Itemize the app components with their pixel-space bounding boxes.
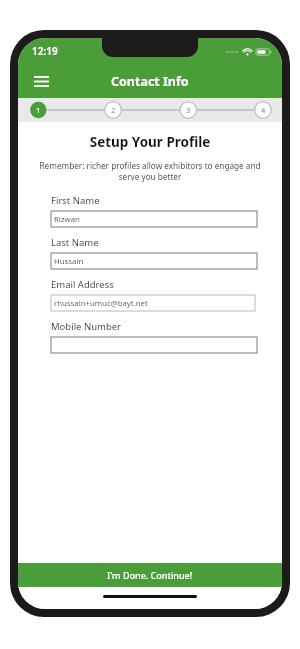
staticText: 2 xyxy=(111,105,116,115)
staticText: Mobile Number xyxy=(51,320,122,333)
staticText: rhussain+umuc@bayt.net xyxy=(54,298,148,309)
button[interactable] xyxy=(51,337,257,353)
staticText: 1 xyxy=(36,105,41,115)
button[interactable]: Hussain xyxy=(51,253,257,269)
button[interactable]: 4 xyxy=(255,102,271,118)
staticText: Hussain xyxy=(54,256,84,267)
button[interactable]: Rizwan xyxy=(51,211,257,227)
button[interactable]: 1 xyxy=(30,102,46,118)
staticText: Rizwan xyxy=(54,214,80,225)
staticText: I'm Done. Continue! xyxy=(107,569,193,581)
button[interactable]: Open navigation menu xyxy=(28,68,54,94)
staticText: Email Address xyxy=(51,278,114,291)
button[interactable]: rhussain+umuc@bayt.net xyxy=(51,295,255,311)
button[interactable]: 2 xyxy=(105,102,121,118)
button[interactable]: 3 xyxy=(180,102,196,118)
staticText: 4 xyxy=(261,105,266,115)
button[interactable]: I'm Done. Continue! xyxy=(18,563,282,587)
staticText: Setup Your Profile xyxy=(18,133,282,151)
staticText: Contact Info xyxy=(111,73,189,90)
staticText: Remember: richer profiles allow exhibito… xyxy=(34,160,266,182)
staticText: 3 xyxy=(186,105,191,115)
staticText: First Name xyxy=(51,194,100,207)
staticText: Last Name xyxy=(51,236,99,249)
staticText: 12:19 xyxy=(32,44,58,58)
